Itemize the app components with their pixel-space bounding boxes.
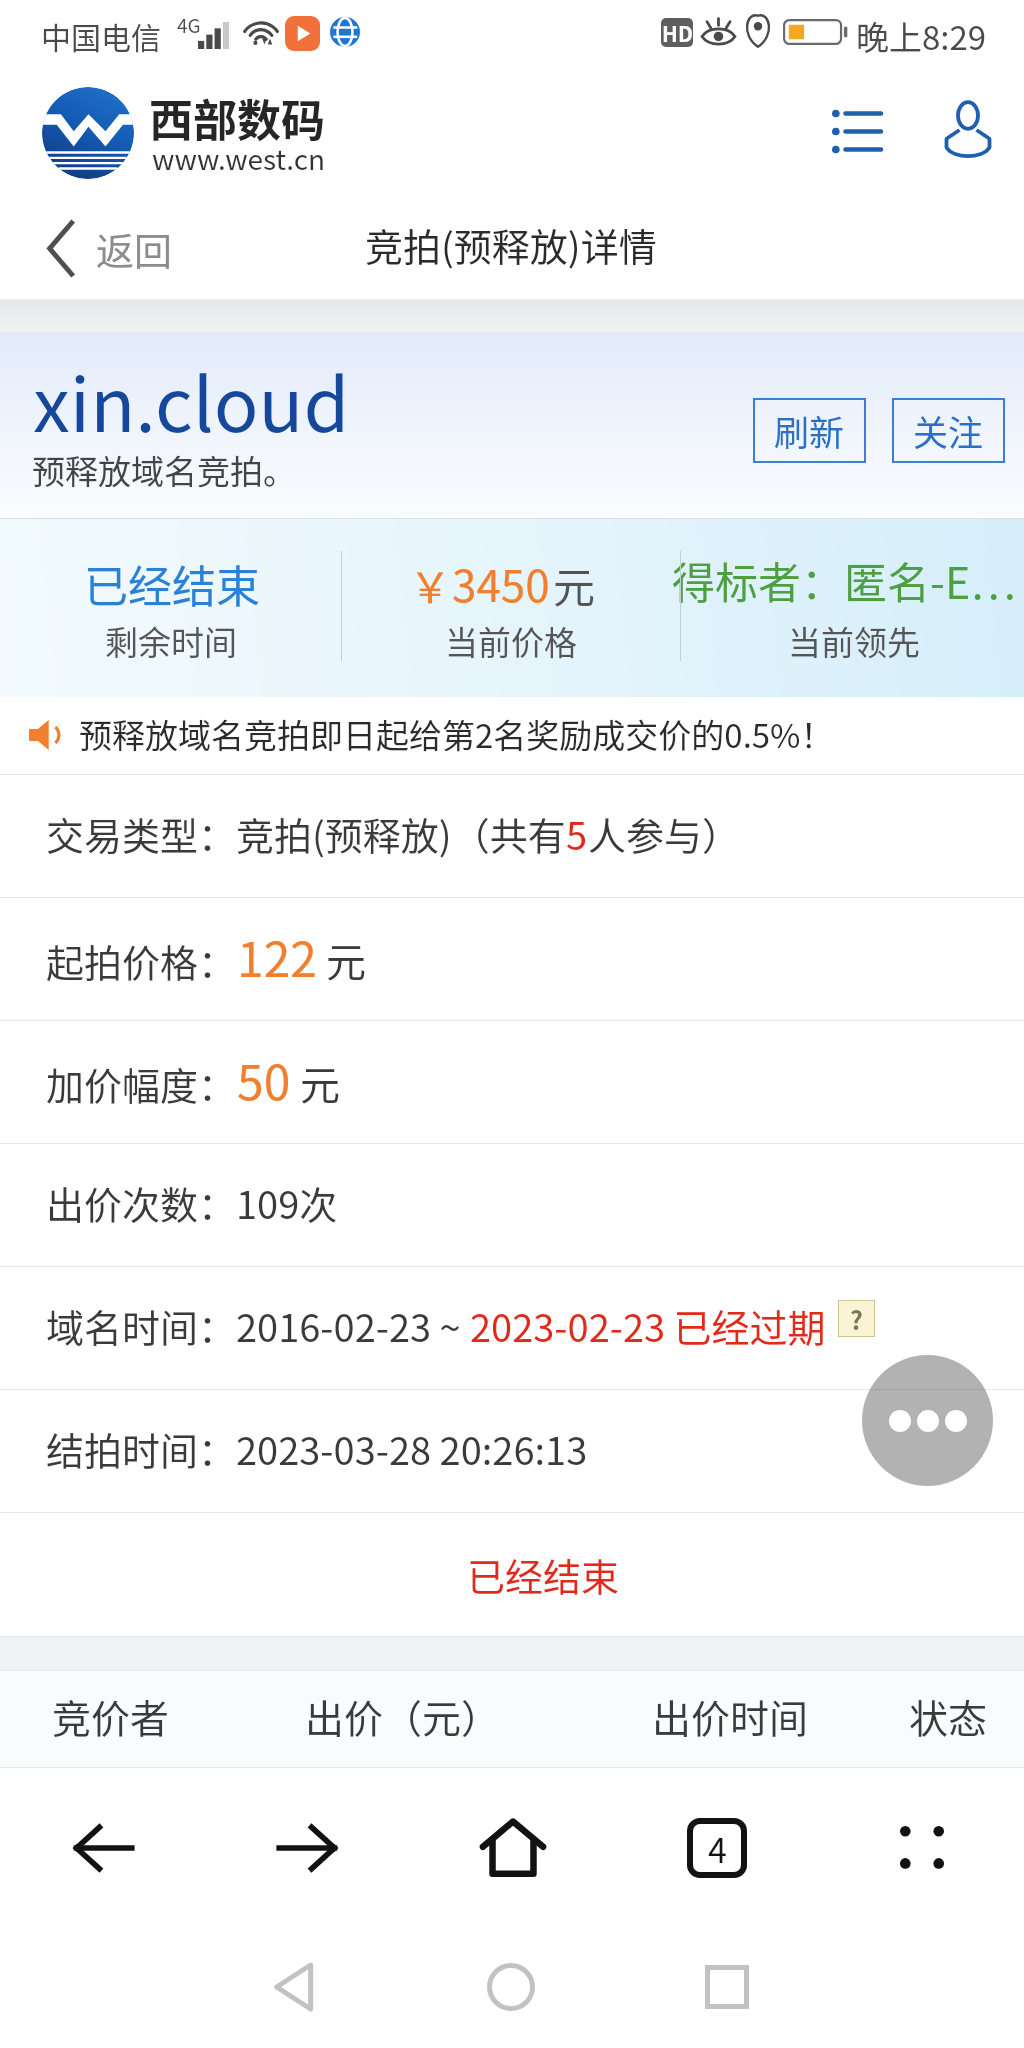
staticText: 结拍时间：2023-03-28 20:26:13 bbox=[46, 1421, 588, 1476]
staticText: 出价时间 bbox=[652, 1688, 809, 1744]
button[interactable]: 返回 bbox=[34, 207, 187, 290]
button[interactable]: Tabs bbox=[614, 1768, 819, 1915]
staticText: 返回 bbox=[96, 221, 173, 276]
staticText: 2023-02-23 已经过期 bbox=[470, 1298, 826, 1353]
staticText: 已经结束 bbox=[467, 1547, 620, 1602]
staticText: 预释放域名竞拍即日起给第2名奖励成交价的0.5%！ bbox=[79, 710, 834, 758]
staticText: 竞价者 bbox=[52, 1688, 170, 1744]
staticText: 西部数码 bbox=[149, 86, 325, 150]
staticText: 已经结束 bbox=[84, 552, 260, 616]
staticText: 122 bbox=[237, 921, 317, 991]
staticText: 50 bbox=[237, 1044, 291, 1114]
staticText: 竞拍(预释放)详情 bbox=[365, 217, 657, 272]
staticText: HD bbox=[662, 18, 693, 47]
button[interactable]: Recents bbox=[619, 1920, 835, 2048]
button[interactable]: Home bbox=[403, 1920, 619, 2048]
staticText: 3450 bbox=[452, 551, 550, 615]
staticText: 预释放域名竞拍。 bbox=[32, 446, 296, 494]
staticText: 剩余时间 bbox=[105, 617, 237, 665]
staticText: 域名时间：2016-02-23 ~ bbox=[46, 1298, 470, 1353]
staticText: 4 bbox=[708, 1824, 727, 1873]
button[interactable]: More options bbox=[862, 1355, 993, 1486]
button[interactable]: Back bbox=[187, 1920, 403, 2048]
staticText: 出价次数：109次 bbox=[46, 1175, 338, 1230]
button[interactable]: Account bbox=[920, 80, 1016, 180]
staticText: 加价幅度： bbox=[46, 1056, 237, 1111]
staticText: 中国电信 bbox=[41, 14, 161, 57]
staticText: 状态 bbox=[909, 1688, 988, 1744]
staticText: 当前价格 bbox=[445, 617, 577, 665]
staticText: 晚上8:29 bbox=[856, 12, 987, 60]
staticText: 元 bbox=[300, 1054, 340, 1112]
staticText: 刷新 bbox=[774, 405, 845, 456]
staticText: 得标者：匿名-E… bbox=[672, 549, 1016, 611]
button[interactable]: Back bbox=[0, 1768, 205, 1915]
staticText: 4G bbox=[177, 11, 201, 39]
button[interactable]: 关注 bbox=[892, 398, 1005, 463]
staticText: 当前领先 bbox=[788, 617, 920, 665]
button[interactable]: Home bbox=[410, 1768, 615, 1915]
button[interactable]: More bbox=[819, 1768, 1024, 1915]
staticText: ￥ bbox=[409, 554, 452, 615]
staticText: 关注 bbox=[913, 405, 984, 456]
staticText: 出价（元） bbox=[305, 1688, 501, 1744]
staticText: xin.cloud bbox=[33, 346, 350, 453]
staticText: www.west.cn bbox=[152, 138, 326, 179]
staticText: 元 bbox=[553, 554, 596, 615]
staticText: 元 bbox=[326, 931, 366, 989]
staticText: ? bbox=[850, 1301, 863, 1337]
button[interactable]: Menu bbox=[808, 84, 904, 178]
staticText: 起拍价格： bbox=[46, 933, 237, 988]
staticText: 5 bbox=[566, 806, 588, 861]
staticText: 交易类型：竞拍(预释放)（共有 bbox=[46, 806, 566, 861]
button[interactable]: 刷新 bbox=[753, 398, 866, 463]
button[interactable]: Forward bbox=[205, 1768, 410, 1915]
staticText: 人参与） bbox=[588, 806, 741, 861]
